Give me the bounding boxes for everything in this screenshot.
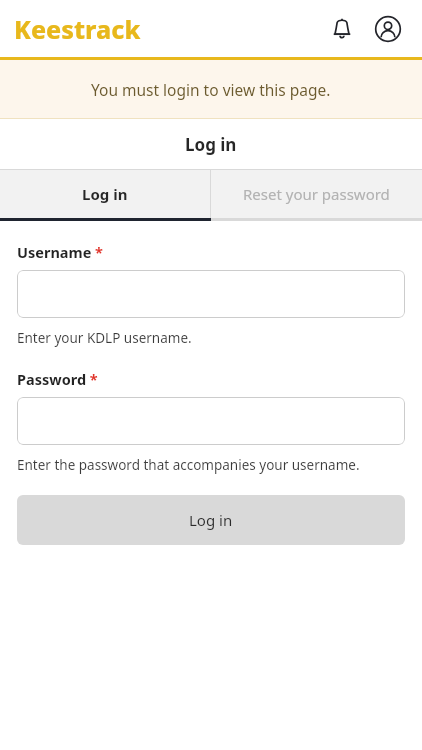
staticText: Keestrack bbox=[14, 12, 141, 46]
staticText: Log in bbox=[189, 510, 233, 530]
staticText: Username * bbox=[17, 242, 103, 262]
button[interactable] bbox=[17, 397, 405, 445]
staticText: Password * bbox=[17, 369, 98, 389]
button[interactable]: Log in bbox=[0, 170, 210, 218]
staticText: Log in bbox=[185, 133, 237, 156]
staticText: Log in bbox=[82, 184, 128, 204]
button[interactable]: Reset your password bbox=[211, 170, 422, 218]
staticText: You must login to view this page. bbox=[91, 79, 331, 100]
button[interactable] bbox=[17, 270, 405, 318]
staticText: Reset your password bbox=[243, 184, 390, 204]
button[interactable]: Notifications bbox=[322, 9, 362, 49]
staticText: Enter the password that accompanies your… bbox=[17, 456, 360, 474]
staticText: Enter your KDLP username. bbox=[17, 329, 192, 347]
button[interactable]: Account bbox=[368, 9, 408, 49]
button[interactable]: Log in bbox=[17, 495, 405, 545]
